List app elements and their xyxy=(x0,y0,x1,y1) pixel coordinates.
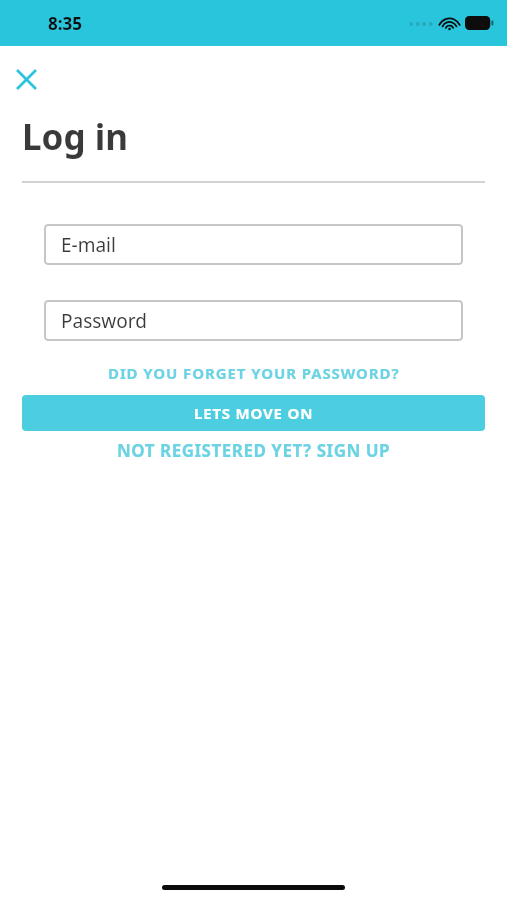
button[interactable]: DID YOU FORGET YOUR PASSWORD? xyxy=(0,363,507,383)
staticText: DID YOU FORGET YOUR PASSWORD? xyxy=(108,363,400,383)
button[interactable]: Password xyxy=(44,300,463,341)
button[interactable]: LETS MOVE ON xyxy=(22,395,485,431)
staticText: 8:35 xyxy=(48,12,82,35)
button[interactable]: Close xyxy=(6,59,46,99)
button[interactable]: E-mail xyxy=(44,224,463,265)
staticText: Log in xyxy=(22,113,128,161)
staticText: NOT REGISTERED YET? SIGN UP xyxy=(117,439,391,462)
staticText: Password xyxy=(61,308,147,334)
button[interactable]: NOT REGISTERED YET? SIGN UP xyxy=(0,439,507,462)
staticText: LETS MOVE ON xyxy=(194,403,314,423)
staticText: E-mail xyxy=(61,232,116,258)
